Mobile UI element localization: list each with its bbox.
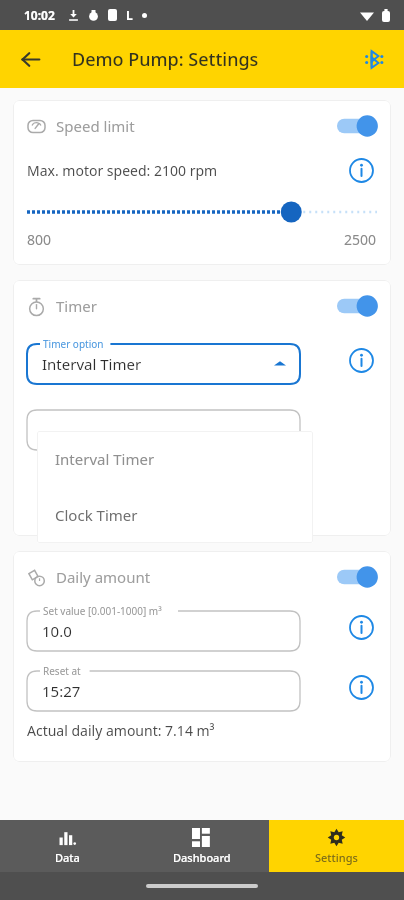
button[interactable]: Daily amount <box>13 551 391 603</box>
button[interactable]: Toggle <box>335 112 379 140</box>
staticText: Settings <box>315 850 358 865</box>
button[interactable]: Toggle <box>335 563 379 591</box>
button[interactable]: Set value [0.001-1000] m³ <box>27 603 300 651</box>
staticText: 15:27 <box>42 681 81 701</box>
staticText: Reset at <box>43 664 81 678</box>
staticText: Timer <box>56 296 97 316</box>
staticText: Dashboard <box>173 850 231 865</box>
staticText: 800 <box>27 230 52 249</box>
staticText: 2500 <box>344 230 377 249</box>
staticText: Actual daily amount: 7.14 m³ <box>27 721 215 740</box>
staticText: Speed limit <box>56 116 135 136</box>
button[interactable]: Data <box>0 820 134 872</box>
button[interactable]: Toggle <box>335 292 379 320</box>
staticText: Timer option <box>43 337 104 351</box>
button[interactable] <box>27 402 300 450</box>
button[interactable]: Speed limit <box>13 100 391 152</box>
staticText: Demo Pump: Settings <box>72 47 259 72</box>
staticText: 10:02 <box>24 7 55 23</box>
staticText: Daily amount <box>56 567 151 587</box>
button[interactable]: Reset at <box>27 663 300 711</box>
button[interactable]: Timer option <box>27 336 300 384</box>
staticText: Interval Timer <box>42 354 142 374</box>
button[interactable]: Timer <box>13 280 391 332</box>
button[interactable]: Clock Timer <box>37 487 313 543</box>
button[interactable]: Back <box>8 37 52 81</box>
staticText: L <box>126 7 133 23</box>
button[interactable]: Info <box>343 669 379 705</box>
button[interactable]: Bluetooth <box>352 38 394 80</box>
button[interactable]: Settings <box>269 820 404 872</box>
button[interactable]: Info <box>343 152 379 188</box>
button[interactable]: Info <box>343 609 379 645</box>
button[interactable]: Info <box>343 342 379 378</box>
staticText: Set value [0.001-1000] m³ <box>43 604 162 618</box>
button[interactable] <box>27 200 377 224</box>
staticText: Data <box>55 850 80 865</box>
staticText: Clock Timer <box>55 505 138 525</box>
staticText: 10.0 <box>42 621 72 641</box>
staticText: Interval Timer <box>55 449 155 469</box>
button[interactable]: Dashboard <box>134 820 269 872</box>
button[interactable]: Interval Timer <box>37 431 313 487</box>
staticText: Max. motor speed: 2100 rpm <box>27 161 218 180</box>
